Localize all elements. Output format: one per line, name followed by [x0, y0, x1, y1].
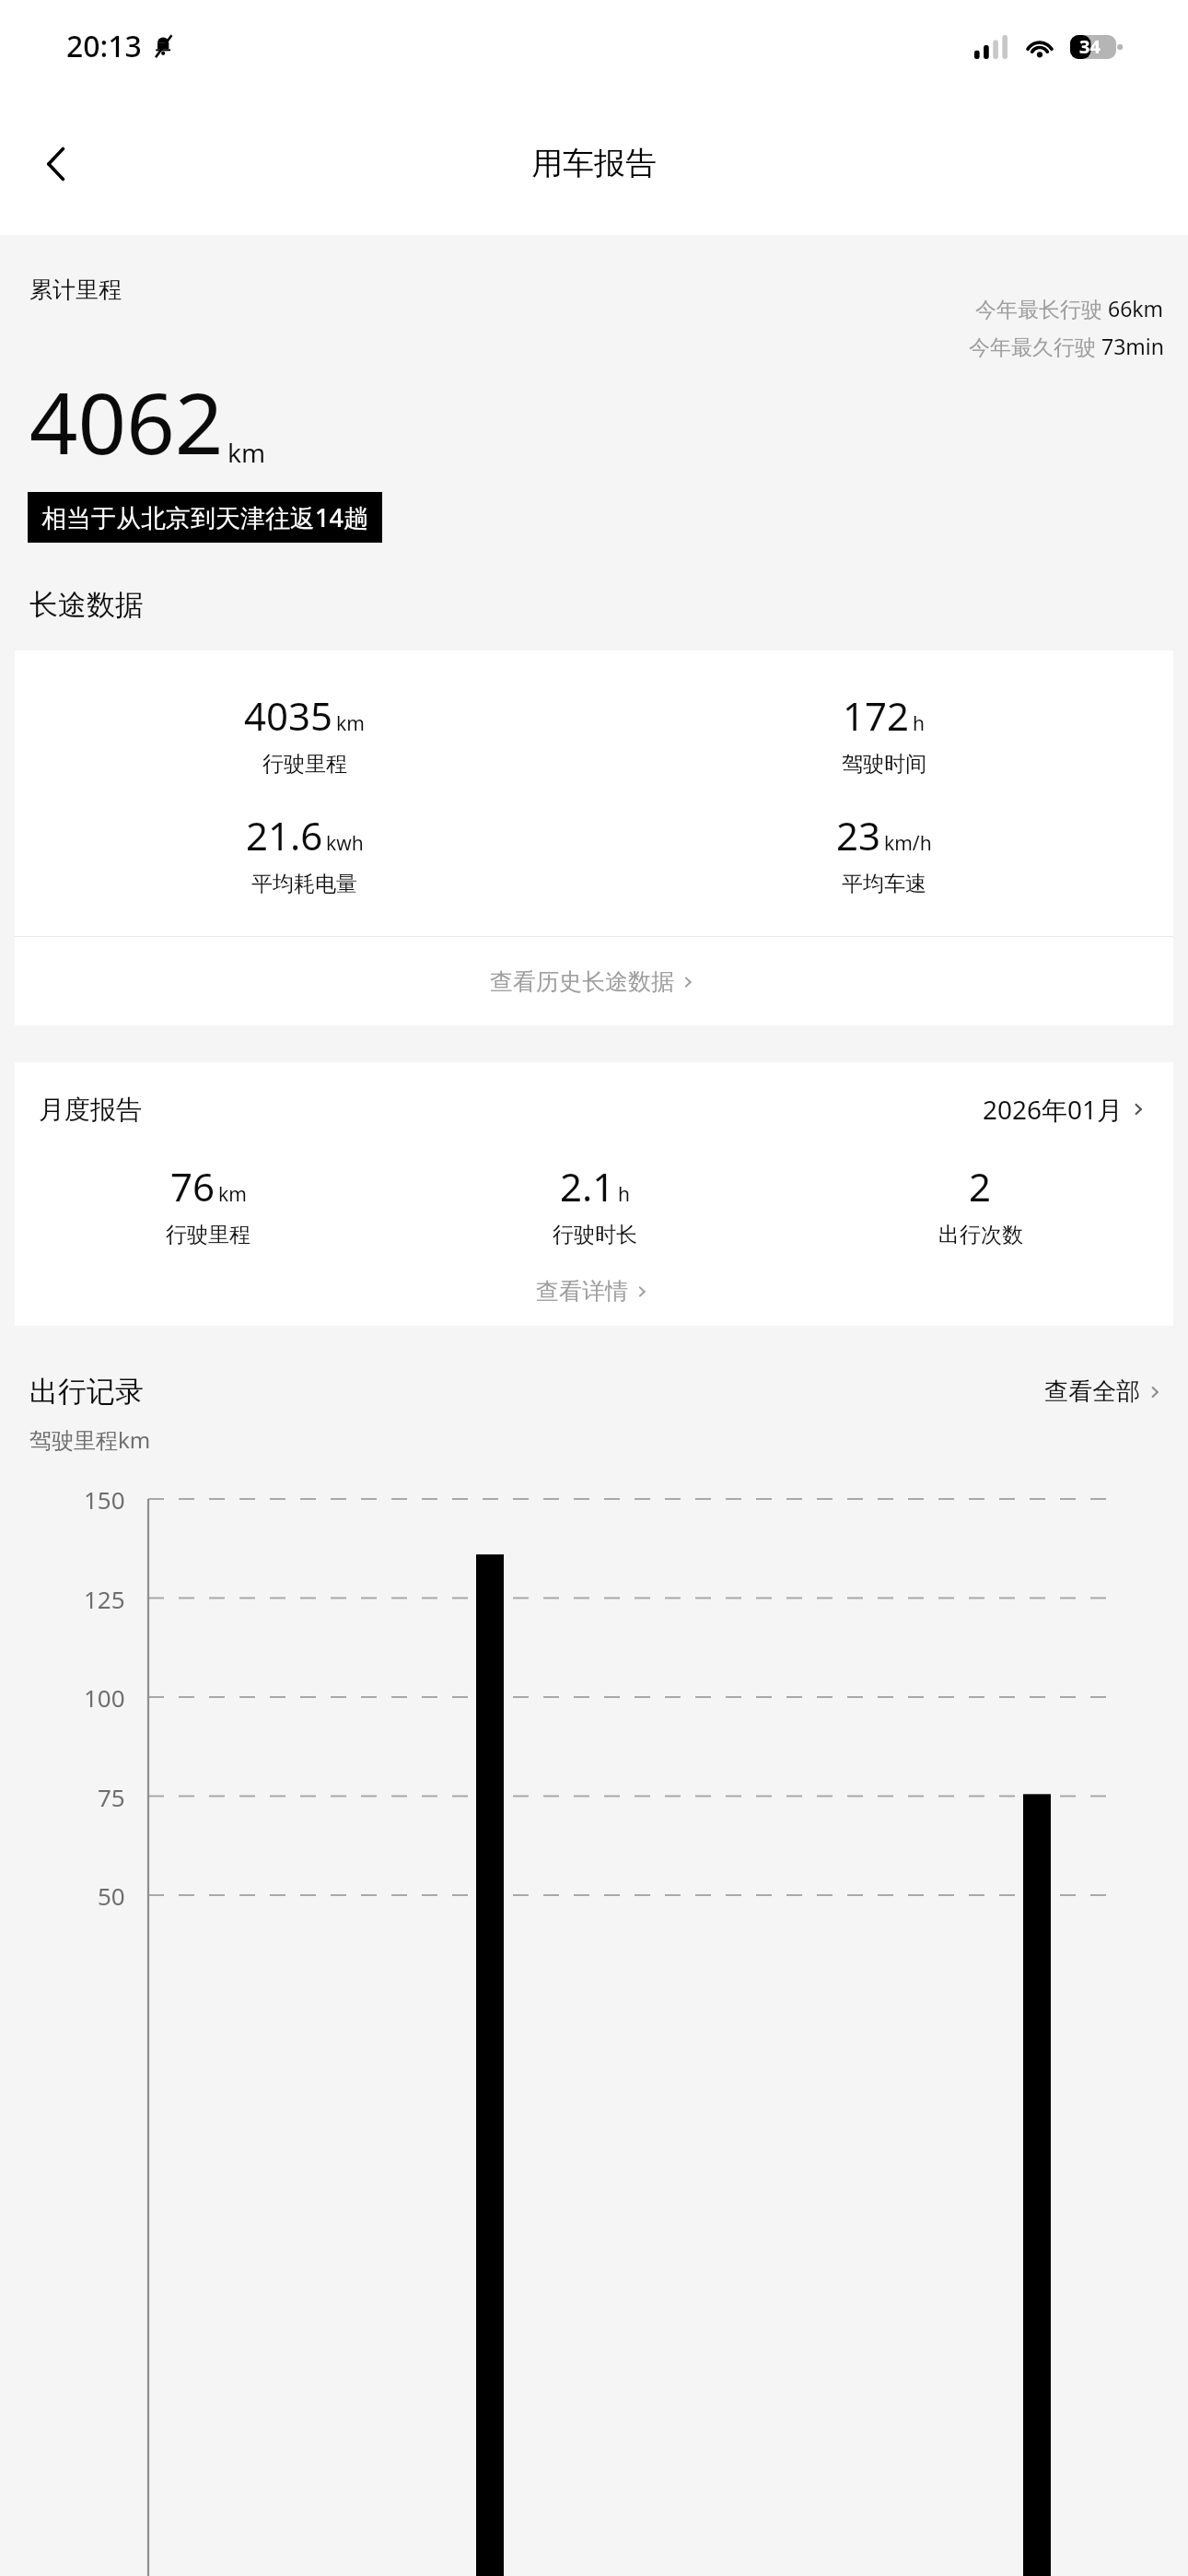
staticText: 用车报告 [531, 144, 657, 183]
staticText: 平均车速 [842, 871, 926, 897]
staticText: 行驶时长 [553, 1222, 637, 1248]
staticText: 66km [1108, 294, 1164, 322]
staticText: 行驶里程 [166, 1222, 250, 1248]
staticText: kwh [326, 830, 364, 857]
staticText: 75 [98, 1781, 125, 1813]
staticText: 4062 [29, 364, 224, 479]
staticText: 4035 [244, 689, 333, 742]
staticText: km [218, 1181, 247, 1208]
staticText: 今年最久行驶 [969, 332, 1101, 360]
staticText: 23 [836, 809, 881, 861]
staticText: 172 [843, 689, 910, 742]
staticText: h [913, 710, 925, 737]
staticText: km [336, 710, 365, 737]
staticText: 76 [170, 1160, 215, 1212]
button[interactable]: Back [22, 129, 92, 199]
staticText: h [618, 1181, 630, 1208]
staticText: 驾驶时间 [842, 751, 926, 778]
staticText: 50 [98, 1879, 125, 1912]
staticText: 20:13 [66, 26, 142, 66]
button[interactable]: 查看全部 [1044, 1376, 1166, 1407]
staticText: 查看详情 [536, 1277, 628, 1306]
staticText: 125 [84, 1583, 125, 1615]
staticText: 驾驶里程km [29, 1424, 151, 1455]
button[interactable]: 查看详情 [15, 1256, 1173, 1326]
staticText: 出行记录 [29, 1374, 144, 1410]
staticText: 行驶里程 [262, 751, 347, 778]
staticText: 查看全部 [1044, 1376, 1140, 1407]
staticText: 累计里程 [29, 275, 122, 304]
staticText: 73min [1101, 332, 1164, 360]
staticText: 出行次数 [938, 1222, 1023, 1248]
staticText: km/h [884, 830, 932, 857]
staticText: 相当于从北京到天津往返14趟 [41, 500, 368, 534]
staticText: 今年最长行驶 [975, 294, 1108, 322]
staticText: 21.6 [246, 809, 323, 861]
staticText: 月度报告 [39, 1094, 142, 1126]
button[interactable]: 2026年01月 [983, 1092, 1149, 1127]
staticText: 34 [1079, 34, 1101, 59]
staticText: 100 [84, 1681, 125, 1714]
staticText: 平均耗电量 [251, 871, 357, 897]
button[interactable]: 查看历史长途数据 [15, 937, 1173, 1025]
staticText: km [227, 435, 266, 470]
staticText: 长途数据 [29, 587, 144, 623]
staticText: 查看历史长途数据 [490, 967, 674, 996]
button[interactable]: 相当于从北京到天津往返14趟 [28, 492, 382, 543]
staticText: 2.1 [560, 1160, 615, 1212]
staticText: 2 [969, 1160, 992, 1212]
staticText: 150 [84, 1483, 125, 1516]
staticText: 2026年01月 [983, 1092, 1124, 1127]
